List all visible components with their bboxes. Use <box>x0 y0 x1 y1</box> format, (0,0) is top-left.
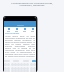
staticText: Word Counter <box>5 32 20 35</box>
staticText: Accurate Results for Counting Words, Cha… <box>6 1 58 7</box>
button[interactable] <box>7 27 10 32</box>
staticText: Lorem ipsum dolor sit amet consectetur a… <box>5 35 35 58</box>
button[interactable] <box>23 27 26 32</box>
button[interactable] <box>15 27 18 32</box>
button[interactable] <box>31 27 34 32</box>
